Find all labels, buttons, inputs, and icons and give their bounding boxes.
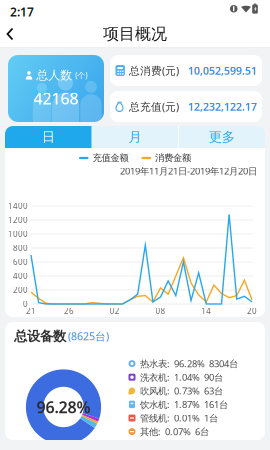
staticText: 10,052,599.51 xyxy=(188,63,257,78)
staticText: 1台 xyxy=(204,412,218,424)
staticText: 0.07% xyxy=(165,425,191,438)
staticText: 饮水机: xyxy=(140,398,170,411)
staticText: 14 xyxy=(201,306,211,316)
staticText: 消费金额 xyxy=(155,152,191,164)
staticText: 6台 xyxy=(195,425,209,438)
staticText: 8304台 xyxy=(209,357,238,370)
staticText: 08 xyxy=(156,306,166,316)
staticText: 吹风机: xyxy=(140,385,170,397)
staticText: 90台 xyxy=(204,371,223,383)
staticText: 200 xyxy=(13,285,28,295)
staticText: 1.87% xyxy=(174,398,200,411)
button[interactable]: 更多 xyxy=(178,126,265,148)
staticText: 20 xyxy=(247,306,257,316)
staticText: 1400 xyxy=(8,201,28,211)
staticText: 项目概况 xyxy=(103,24,167,44)
staticText: 总设备数 xyxy=(14,328,66,344)
button[interactable]: Back xyxy=(0,23,24,45)
staticText: 26 xyxy=(64,306,74,316)
staticText: 21 xyxy=(26,306,36,316)
staticText: 600 xyxy=(13,257,28,267)
staticText: 充值金额 xyxy=(92,152,128,164)
staticText: (个) xyxy=(75,70,87,81)
staticText: 400 xyxy=(13,271,28,281)
staticText: 更多 xyxy=(209,129,235,145)
staticText: 0.01% xyxy=(174,412,200,424)
staticText: 0 xyxy=(23,299,28,309)
staticText: 总充值(元) xyxy=(129,99,179,114)
staticText: 96.28% xyxy=(36,396,90,418)
staticText: 02 xyxy=(110,306,120,316)
staticText: 1.04% xyxy=(174,371,200,383)
staticText: 月 xyxy=(129,129,142,145)
staticText: 其他: xyxy=(140,425,161,438)
staticText: 2019年11月21日-2019年12月20日 xyxy=(120,165,257,177)
staticText: 洗衣机: xyxy=(140,371,170,383)
staticText: 日 xyxy=(42,129,55,145)
staticText: 总消费(元) xyxy=(129,63,179,78)
staticText: 2:17 xyxy=(10,4,34,20)
button[interactable]: 月 xyxy=(92,126,178,148)
staticText: 96.28% xyxy=(174,357,205,370)
staticText: 63台 xyxy=(204,385,223,397)
staticText: 1200 xyxy=(8,215,28,225)
button[interactable]: 日 xyxy=(5,126,92,148)
staticText: (8625台) xyxy=(68,329,109,343)
staticText: 161台 xyxy=(204,398,228,411)
staticText: 0.73% xyxy=(174,385,200,397)
staticText: 12,232,122.17 xyxy=(188,99,257,114)
staticText: 1000 xyxy=(8,229,28,239)
staticText: 总人数 xyxy=(36,68,72,83)
staticText: 42168 xyxy=(33,88,78,109)
staticText: 热水表: xyxy=(140,357,170,370)
staticText: 800 xyxy=(13,243,28,253)
staticText: 管线机: xyxy=(140,412,170,424)
